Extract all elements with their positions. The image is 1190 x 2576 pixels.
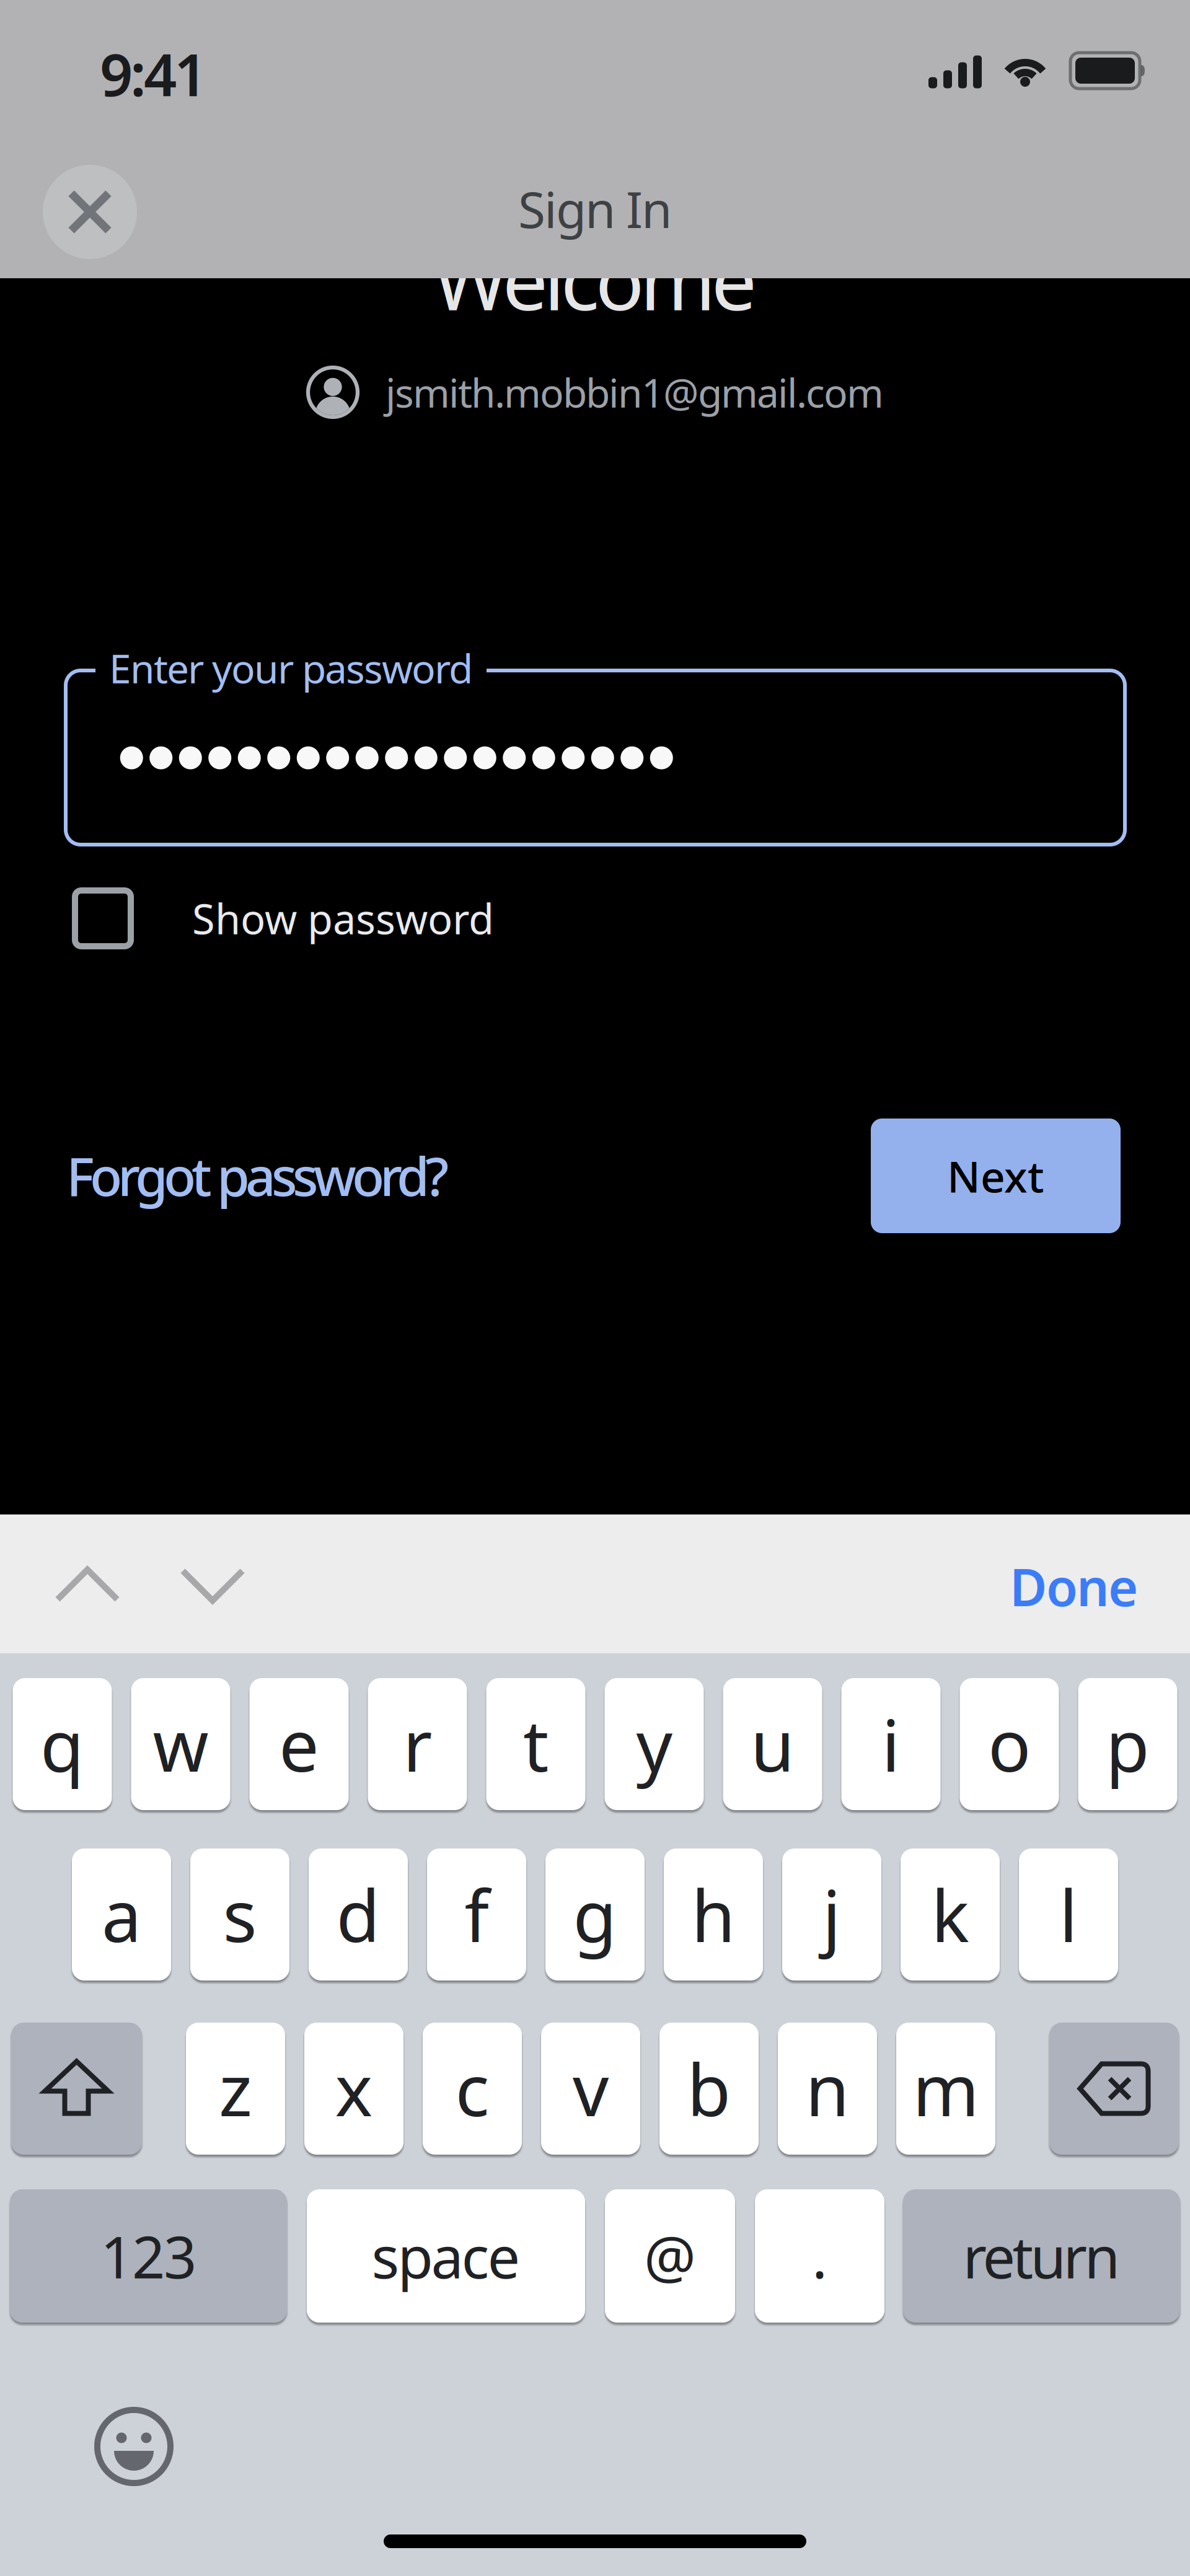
button[interactable]: return (903, 2189, 1180, 2323)
button[interactable] (11, 2023, 142, 2155)
staticText: x (335, 2041, 373, 2136)
staticText: @ (644, 2218, 696, 2294)
button[interactable]: t (486, 1678, 585, 1810)
staticText: u (751, 1697, 795, 1791)
staticText: z (219, 2041, 252, 2136)
button[interactable]: f (427, 1848, 526, 1980)
button[interactable]: Show password (75, 890, 494, 946)
button[interactable]: a (72, 1848, 171, 1980)
button[interactable]: p (1078, 1678, 1177, 1810)
button[interactable]: 123 (10, 2189, 287, 2323)
button[interactable]: space (307, 2189, 585, 2323)
staticText: Enter your password (109, 642, 473, 694)
button[interactable]: . (755, 2189, 884, 2323)
button[interactable]: y (605, 1678, 704, 1810)
staticText: Forgot password? (66, 1140, 449, 1211)
staticText: 9:41 (100, 35, 207, 112)
button[interactable]: k (901, 1848, 1000, 1980)
staticText: Welcome (433, 225, 757, 333)
staticText: l (1059, 1867, 1078, 1962)
staticText: s (223, 1867, 257, 1962)
staticText: Sign In (518, 176, 672, 242)
button[interactable]: q (13, 1678, 112, 1810)
staticText: return (963, 2218, 1120, 2294)
button[interactable]: g (545, 1848, 645, 1980)
staticText: j (822, 1867, 841, 1962)
button[interactable]: s (190, 1848, 289, 1980)
staticText: space (372, 2218, 520, 2294)
button[interactable]: u (723, 1678, 822, 1810)
button[interactable]: c (423, 2023, 522, 2155)
button[interactable]: v (541, 2023, 640, 2155)
staticText: i (882, 1697, 900, 1791)
staticText: p (1106, 1697, 1150, 1791)
staticText: d (336, 1867, 380, 1962)
button[interactable]: l (1019, 1848, 1118, 1980)
staticText: g (573, 1867, 617, 1962)
staticText: w (153, 1697, 209, 1791)
button[interactable]: m (896, 2023, 995, 2155)
button[interactable]: h (664, 1848, 763, 1980)
staticText: t (523, 1697, 549, 1791)
button[interactable]: z (186, 2023, 285, 2155)
staticText: r (403, 1697, 432, 1791)
staticText: h (691, 1867, 735, 1962)
button[interactable]: n (778, 2023, 877, 2155)
button[interactable]: i (841, 1678, 941, 1810)
staticText: n (805, 2041, 849, 2136)
button[interactable]: r (368, 1678, 467, 1810)
button[interactable]: @ (605, 2189, 735, 2323)
button[interactable] (94, 2406, 174, 2487)
staticText: q (40, 1697, 84, 1791)
button[interactable]: o (960, 1678, 1059, 1810)
button[interactable] (1049, 2023, 1179, 2155)
button[interactable] (43, 165, 137, 259)
staticText: Done (1010, 1552, 1138, 1620)
staticText: o (988, 1697, 1031, 1791)
staticText: y (636, 1697, 672, 1791)
button[interactable]: Next (871, 1119, 1121, 1233)
button[interactable]: x (304, 2023, 403, 2155)
staticText: f (465, 1867, 489, 1962)
button[interactable] (58, 1570, 117, 1599)
staticText: . (812, 2218, 827, 2294)
button[interactable]: d (309, 1848, 408, 1980)
button[interactable] (183, 1571, 242, 1601)
button[interactable]: w (131, 1678, 230, 1810)
button[interactable]: e (249, 1678, 349, 1810)
button[interactable]: b (659, 2023, 759, 2155)
staticText: jsmith.mobbin1@gmail.com (386, 366, 884, 419)
button[interactable]: Forgot password? (66, 1140, 449, 1211)
staticText: Show password (192, 891, 494, 946)
staticText: e (279, 1697, 319, 1791)
button[interactable]: Done (1010, 1552, 1138, 1620)
button[interactable]: jsmith.mobbin1@gmail.com (306, 366, 884, 419)
staticText: m (913, 2041, 979, 2136)
staticText: b (687, 2041, 731, 2136)
staticText: a (102, 1867, 141, 1962)
staticText: c (455, 2041, 489, 2136)
staticText: 123 (100, 2218, 196, 2294)
button[interactable]: j (782, 1848, 881, 1980)
staticText: v (573, 2041, 609, 2136)
staticText: k (931, 1867, 969, 1962)
staticText: Next (947, 1147, 1044, 1204)
